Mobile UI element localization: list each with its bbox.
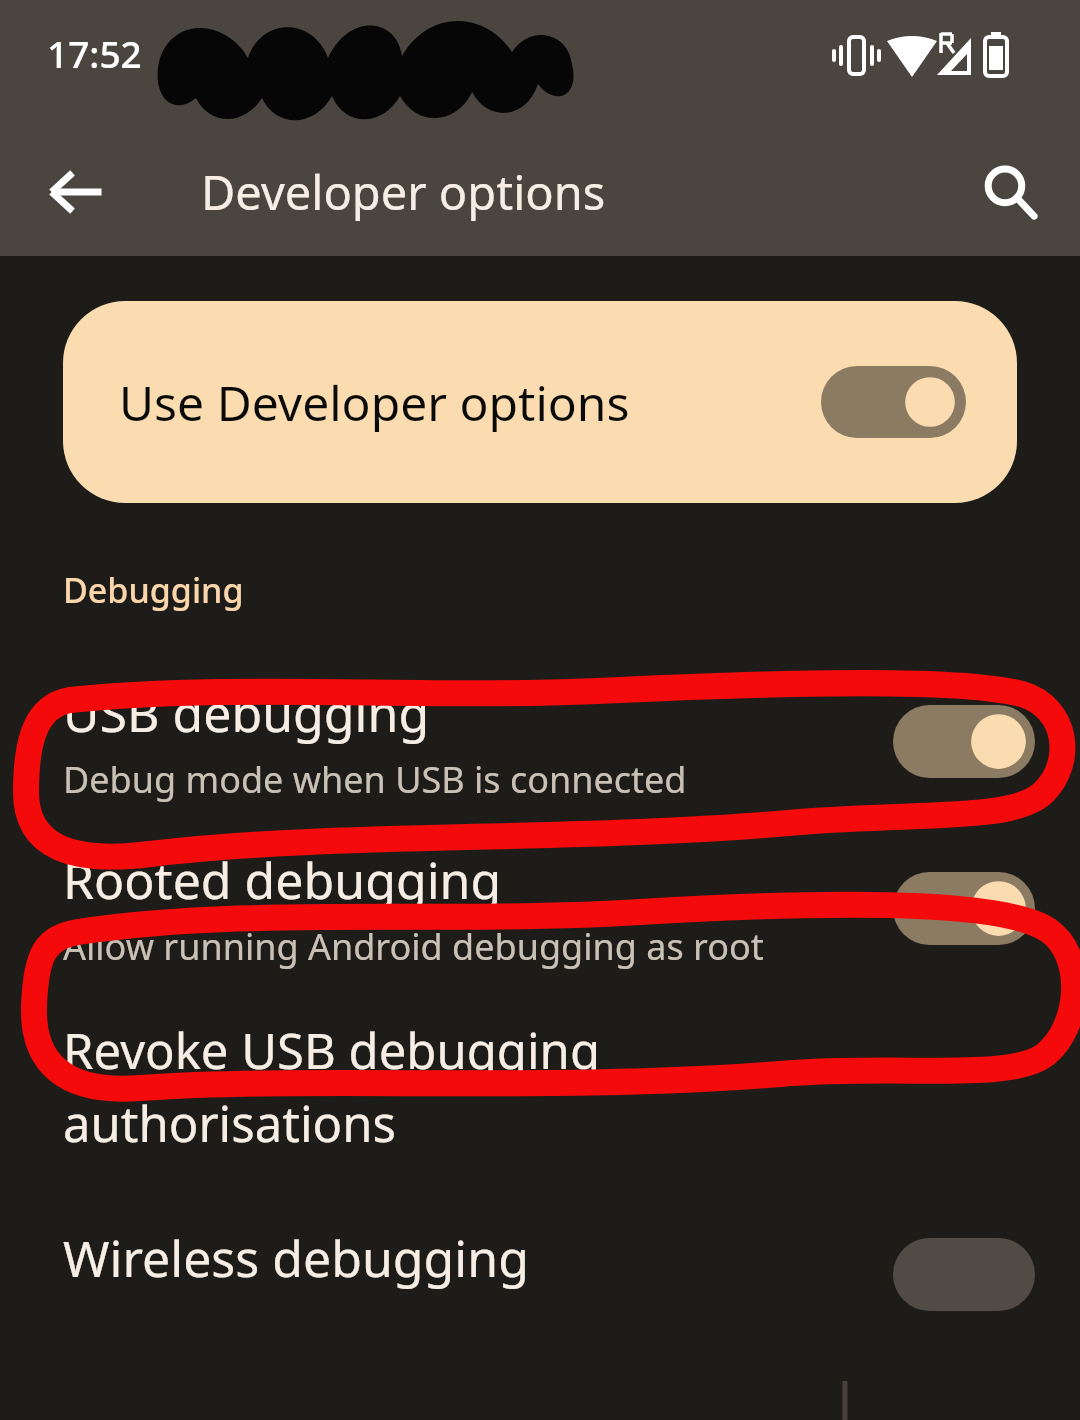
staticText: USB debugging — [63, 679, 430, 747]
staticText: Wireless debugging — [63, 1224, 893, 1292]
staticText: Debug mode when USB is connected — [63, 755, 687, 804]
staticText: Allow running Android debugging as root — [63, 922, 764, 971]
staticText: Rooted debugging — [63, 846, 502, 914]
button[interactable]: Use Developer options — [63, 301, 1017, 503]
button[interactable]: Rooted debugging — [0, 846, 1080, 971]
staticText: Debugging — [63, 567, 244, 613]
staticText: 17:52 — [47, 28, 142, 78]
staticText: Developer options — [201, 160, 606, 224]
staticText: Revoke USB debugging authorisations — [63, 1017, 601, 1156]
button[interactable]: USB debugging — [0, 679, 1080, 804]
staticText: Use Developer options — [119, 370, 630, 435]
button[interactable]: Search — [962, 144, 1058, 240]
button[interactable]: Revoke USB debugging authorisations — [0, 1017, 1080, 1156]
button[interactable]: Wireless debugging — [0, 1224, 1080, 1297]
button[interactable]: Back — [28, 144, 124, 240]
